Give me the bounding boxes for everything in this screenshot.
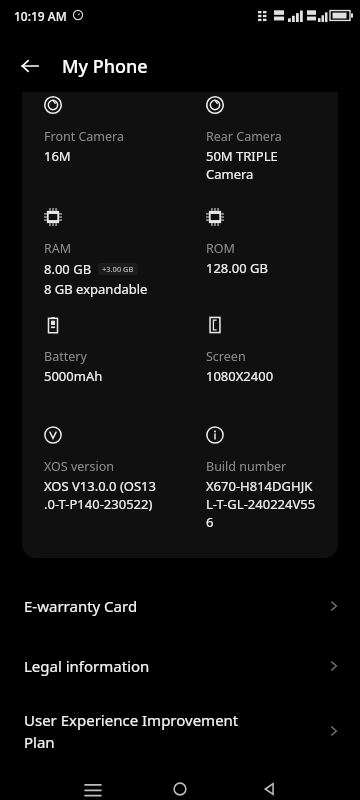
staticText: 1080X2400 [206,367,274,385]
button[interactable]: Recent apps [73,769,113,800]
staticText: 10:19 AM [14,8,67,24]
staticText: My Phone [62,54,148,79]
staticText: Legal information [24,656,150,676]
staticText: Screen [206,348,246,365]
button[interactable]: Back [12,48,48,84]
staticText: 8.00 GB [44,260,92,278]
staticText: ROM [206,240,235,257]
button[interactable]: Back [250,769,290,800]
staticText: RAM [44,240,72,257]
staticText: X670-H814DGHJK L-T-GL-240224V55 6 [206,477,316,531]
button[interactable]: Legal information [0,638,360,694]
staticText: Rear Camera [206,128,282,145]
staticText: 8 GB expandable [44,280,148,298]
staticText: Front Camera [44,128,125,145]
staticText: +3.00 GB [102,264,134,274]
staticText: XOS version [44,458,115,475]
staticText: Build number [206,458,287,475]
button[interactable]: User Experience Improvement Plan [0,700,360,762]
staticText: XOS V13.0.0 (OS13 .0-T-P140-230522) [44,477,156,513]
button[interactable]: Home [160,769,200,800]
staticText: 16M [44,147,71,165]
staticText: User Experience Improvement Plan [24,710,239,753]
staticText: E-warranty Card [24,596,138,616]
staticText: 50M TRIPLE Camera [206,147,278,183]
staticText: 5000mAh [44,367,103,385]
staticText: Battery [44,348,87,365]
staticText: 128.00 GB [206,259,268,277]
button[interactable]: E-warranty Card [0,578,360,634]
